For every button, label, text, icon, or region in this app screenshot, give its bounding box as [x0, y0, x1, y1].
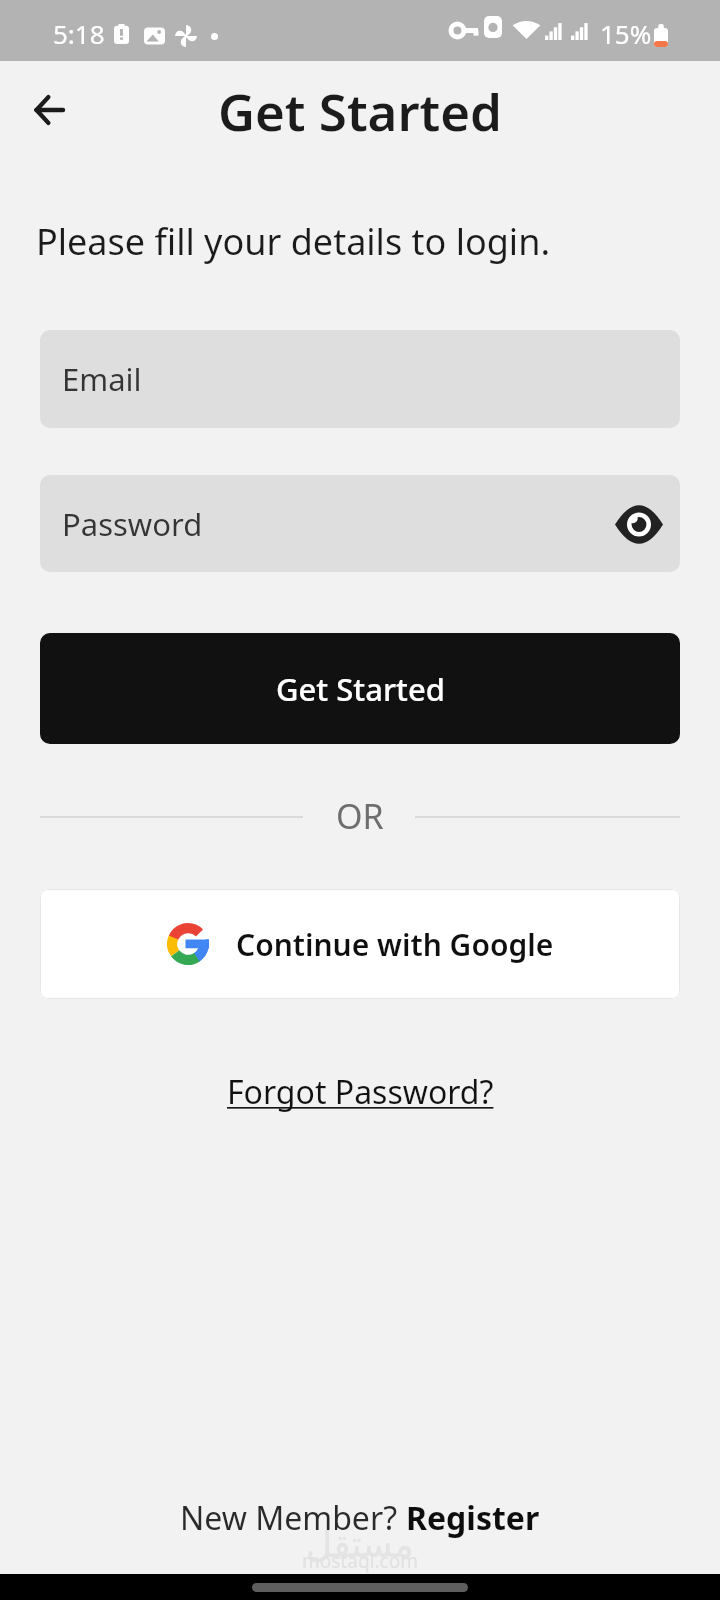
button[interactable]: Continue with Google: [40, 889, 680, 999]
staticText: 5:18: [53, 16, 105, 51]
button[interactable]: Register: [406, 1496, 540, 1540]
staticText: Get Started: [276, 668, 445, 710]
button[interactable]: Show password: [610, 495, 668, 553]
button[interactable]: Password: [40, 475, 680, 572]
staticText: Password: [62, 503, 203, 545]
staticText: Please fill your details to login.: [36, 217, 551, 266]
staticText: OR: [336, 793, 384, 839]
staticText: Email: [62, 358, 142, 400]
staticText: New Member?: [180, 1496, 406, 1540]
staticText: Continue with Google: [236, 924, 554, 965]
staticText: 15%: [600, 16, 652, 51]
staticText: mostaql.com: [302, 1548, 418, 1574]
staticText: Get Started: [218, 76, 503, 145]
button[interactable]: Get Started: [40, 633, 680, 744]
button[interactable]: Forgot Password?: [227, 1070, 494, 1114]
button[interactable]: Back: [23, 84, 75, 136]
button[interactable]: Email: [40, 330, 680, 428]
staticText: مستقل: [306, 1524, 414, 1566]
